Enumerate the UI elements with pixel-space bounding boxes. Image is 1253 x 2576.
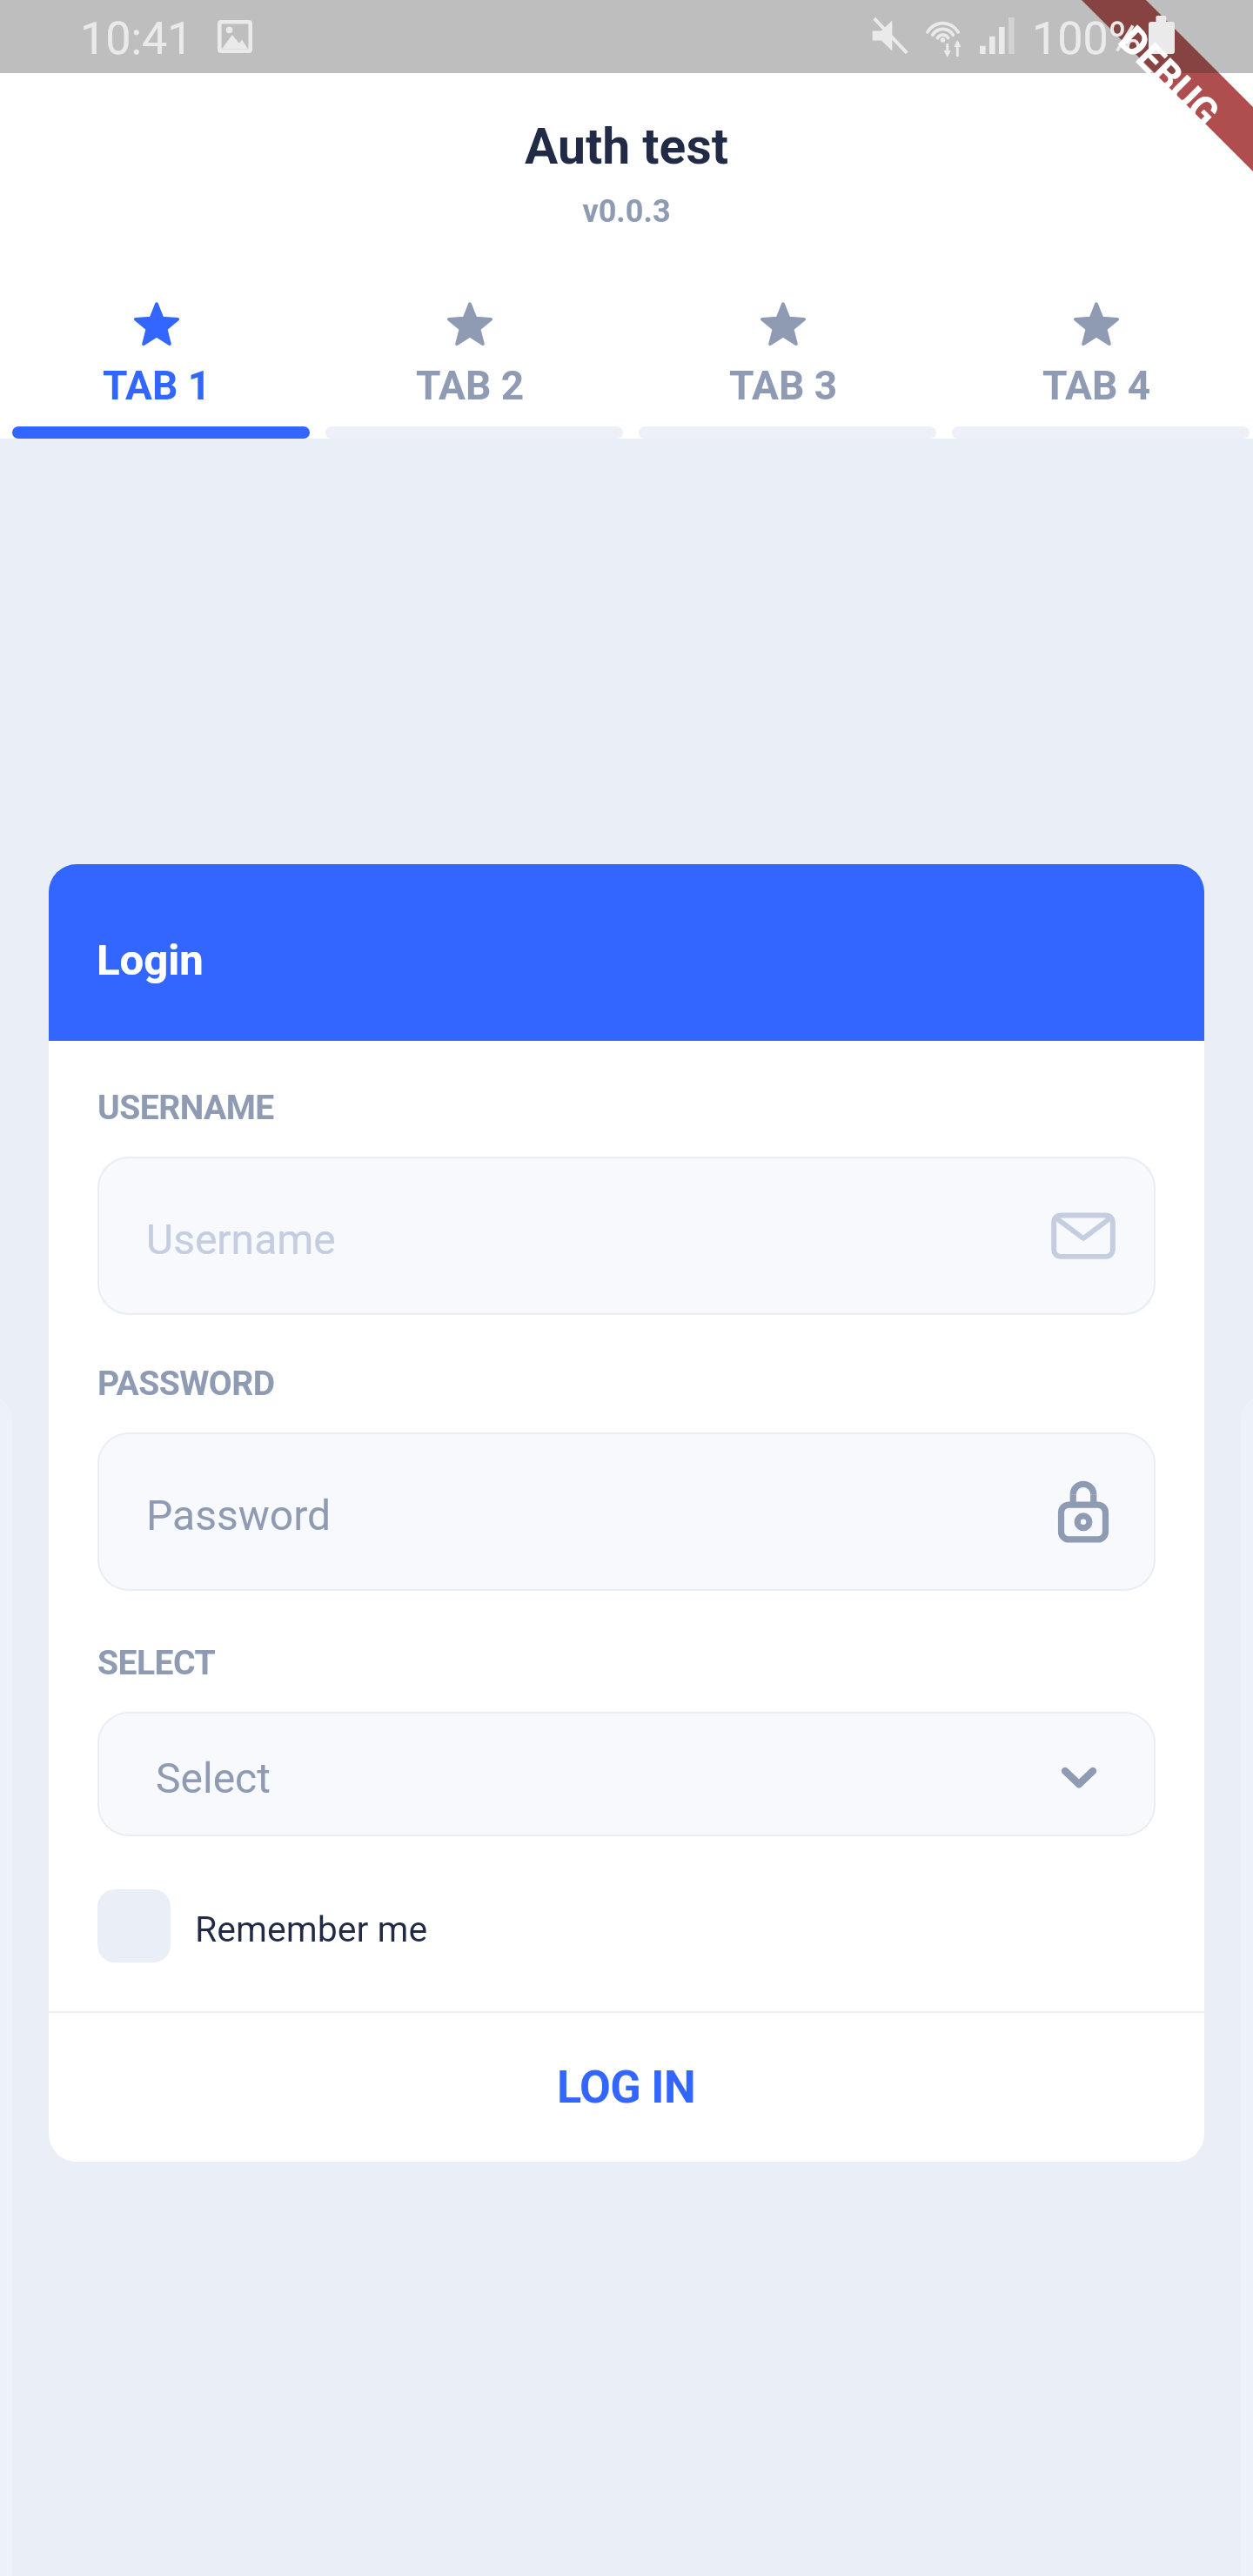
button[interactable]: Remember me (97, 1889, 428, 1962)
staticText: TAB 4 (1042, 362, 1151, 409)
staticText: LOG IN (557, 2061, 696, 2114)
button[interactable]: Username (97, 1157, 1156, 1315)
staticText: Login (97, 936, 204, 985)
staticText: TAB 3 (729, 362, 838, 409)
button[interactable]: LOG IN (49, 2013, 1204, 2162)
button[interactable]: Password (97, 1432, 1156, 1591)
staticText: PASSWORD (97, 1364, 275, 1404)
button[interactable]: TAB 3 (626, 273, 940, 439)
staticText: DEBUG (1110, 17, 1228, 136)
staticText: 100% (1032, 12, 1142, 65)
staticText: SELECT (97, 1643, 216, 1683)
staticText: Password (146, 1491, 332, 1540)
button[interactable]: TAB 2 (313, 273, 626, 439)
staticText: Username (146, 1215, 336, 1264)
other: Email (1050, 1209, 1116, 1263)
staticText: USERNAME (97, 1088, 274, 1128)
button[interactable]: TAB 1 (0, 273, 313, 439)
other: Expand (1042, 1757, 1116, 1792)
staticText: Remember me (195, 1909, 428, 1950)
staticText: TAB 2 (416, 362, 525, 409)
staticText: TAB 1 (103, 362, 211, 409)
other: Password (1050, 1479, 1116, 1545)
staticText: Select (156, 1754, 271, 1802)
staticText: 10:41 (80, 12, 193, 65)
button[interactable]: Select (97, 1712, 1156, 1836)
button[interactable]: TAB 4 (940, 273, 1253, 439)
staticText: Auth test (0, 117, 1253, 176)
staticText: v0.0.3 (0, 193, 1253, 230)
